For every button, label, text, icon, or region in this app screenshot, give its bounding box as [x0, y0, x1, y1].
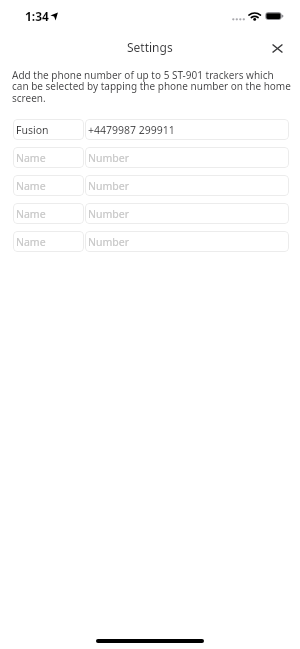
button[interactable]: Name — [13, 175, 84, 196]
staticText: Name — [16, 207, 46, 221]
staticText: Number — [88, 235, 130, 249]
staticText: Number — [88, 151, 130, 165]
button[interactable]: Number — [85, 203, 289, 224]
button[interactable]: Number — [85, 175, 289, 196]
staticText: Number — [88, 179, 130, 193]
staticText: Add the phone number of up to 5 ST-901 t… — [12, 68, 291, 105]
staticText: Settings — [127, 39, 173, 55]
staticText: Fusion — [16, 123, 49, 137]
staticText: +4479987 299911 — [88, 123, 175, 137]
button[interactable]: Name — [13, 147, 84, 168]
staticText: 1:34 — [25, 8, 49, 24]
button[interactable]: Number — [85, 147, 289, 168]
staticText: Name — [16, 235, 46, 249]
button[interactable]: Name — [13, 231, 84, 252]
staticText: Name — [16, 179, 46, 193]
button[interactable]: Name — [13, 203, 84, 224]
button[interactable]: Fusion — [13, 119, 84, 140]
button[interactable]: +4479987 299911 — [85, 119, 289, 140]
button[interactable]: Number — [85, 231, 289, 252]
staticText: Name — [16, 151, 46, 165]
staticText: Number — [88, 207, 130, 221]
button[interactable]: Close — [266, 37, 288, 59]
